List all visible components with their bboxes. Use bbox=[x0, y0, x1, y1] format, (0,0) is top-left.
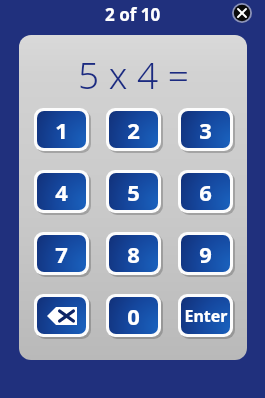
staticText: 4 bbox=[55, 177, 68, 207]
button[interactable]: 5 bbox=[106, 170, 161, 213]
button[interactable]: 8 bbox=[106, 232, 161, 275]
button[interactable]: 4 bbox=[34, 170, 89, 213]
staticText: 7 bbox=[55, 239, 68, 269]
button[interactable]: 1 bbox=[34, 108, 89, 151]
staticText: 3 bbox=[199, 115, 212, 145]
button[interactable]: 9 bbox=[178, 232, 233, 275]
button[interactable]: 0 bbox=[106, 294, 161, 337]
button[interactable]: 2 bbox=[106, 108, 161, 151]
staticText: 8 bbox=[127, 239, 140, 269]
button[interactable]: Backspace bbox=[34, 294, 89, 337]
button[interactable]: 6 bbox=[178, 170, 233, 213]
staticText: 6 bbox=[199, 177, 212, 207]
staticText: 5 bbox=[127, 177, 140, 207]
button[interactable]: Enter bbox=[178, 294, 233, 337]
staticText: 2 of 10 bbox=[105, 3, 161, 26]
staticText: 5 x 4 = bbox=[78, 49, 189, 99]
staticText: 0 bbox=[127, 301, 140, 331]
staticText: 9 bbox=[199, 239, 212, 269]
button[interactable]: 7 bbox=[34, 232, 89, 275]
staticText: 1 bbox=[55, 115, 68, 145]
button[interactable]: Close bbox=[232, 3, 252, 23]
staticText: Enter bbox=[184, 305, 228, 327]
staticText: 2 bbox=[127, 115, 140, 145]
button[interactable]: 3 bbox=[178, 108, 233, 151]
